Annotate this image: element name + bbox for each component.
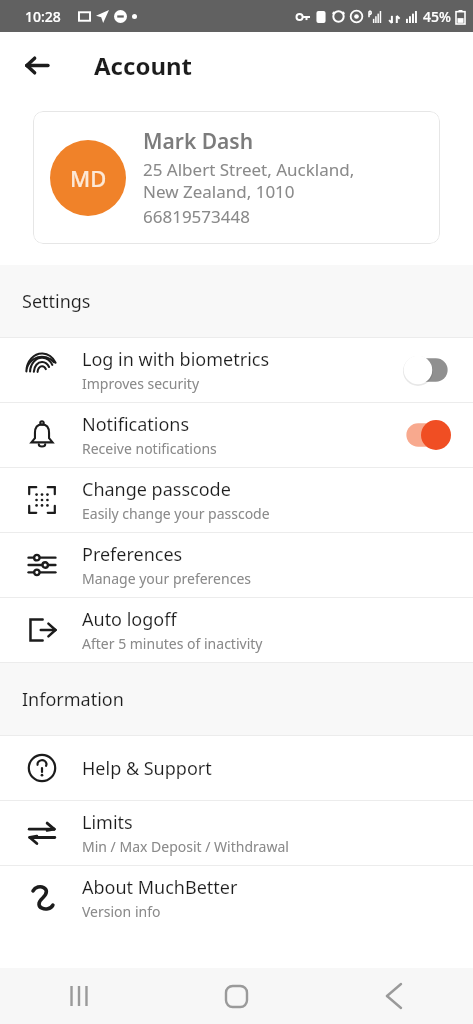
staticText: MD [70, 163, 107, 193]
button[interactable]: Limits [0, 801, 473, 865]
button[interactable]: Help & Support [0, 736, 473, 800]
staticText: Account [94, 49, 192, 82]
button[interactable]: Auto logoff [0, 598, 473, 662]
staticText: Information [22, 687, 124, 712]
button[interactable]: Back [14, 43, 58, 87]
staticText: 25 Albert Street, Auckland, New Zealand,… [143, 158, 355, 203]
staticText: 66819573448 [143, 205, 250, 228]
button[interactable]: Back [315, 968, 473, 1024]
staticText: After 5 minutes of inactivity [82, 634, 263, 653]
staticText: Preferences [82, 542, 183, 567]
staticText: Change passcode [82, 477, 231, 502]
staticText: Auto logoff [82, 607, 177, 632]
button[interactable]: Recent apps [0, 968, 157, 1024]
button[interactable]: Toggle off [403, 355, 451, 385]
button[interactable]: MD [33, 111, 440, 244]
staticText: Notifications [82, 412, 190, 437]
staticText: Improves security [82, 374, 200, 393]
staticText: Receive notifications [82, 439, 217, 458]
button[interactable]: Toggle on [403, 420, 451, 450]
button[interactable]: Change passcode [0, 468, 473, 532]
button[interactable]: Preferences [0, 533, 473, 597]
staticText: 45% [423, 7, 451, 26]
button[interactable]: Notifications [0, 403, 473, 467]
staticText: Min / Max Deposit / Withdrawal [82, 837, 289, 856]
staticText: Easily change your passcode [82, 504, 270, 523]
button[interactable]: About MuchBetter [0, 866, 473, 930]
staticText: Version info [82, 902, 161, 921]
staticText: Log in with biometrics [82, 347, 270, 372]
staticText: 10:28 [25, 7, 61, 26]
button[interactable]: Log in with biometrics [0, 338, 473, 402]
staticText: Limits [82, 810, 133, 835]
staticText: Mark Dash [143, 127, 254, 156]
staticText: Help & Support [82, 756, 212, 781]
button[interactable]: Home [157, 968, 315, 1024]
staticText: Manage your preferences [82, 569, 251, 588]
staticText: About MuchBetter [82, 875, 238, 900]
staticText: Settings [22, 289, 91, 314]
